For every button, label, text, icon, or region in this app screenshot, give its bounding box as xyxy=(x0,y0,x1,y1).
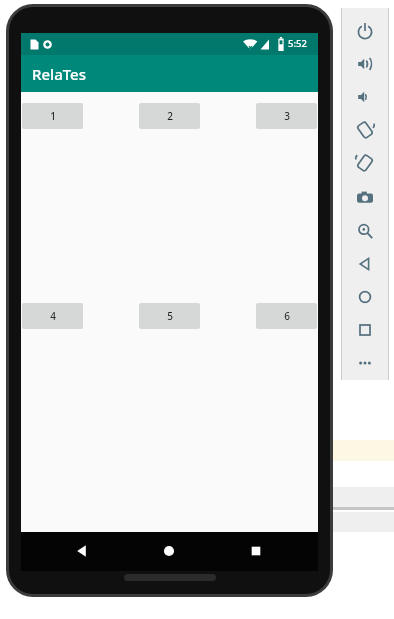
staticText: 5:52 xyxy=(288,37,307,50)
button[interactable]: More xyxy=(348,349,382,377)
button[interactable]: Rotate right xyxy=(348,149,382,177)
button[interactable]: Zoom xyxy=(348,217,382,245)
button[interactable]: 4 xyxy=(22,303,83,329)
button[interactable]: Volume down xyxy=(348,83,382,111)
button[interactable]: 1 xyxy=(22,103,83,129)
button[interactable]: Power xyxy=(348,17,382,45)
staticText: 6 xyxy=(284,309,290,323)
button[interactable]: 2 xyxy=(139,103,200,129)
button[interactable]: Home xyxy=(157,539,181,563)
staticText: 4 xyxy=(50,309,56,323)
button[interactable]: Volume up xyxy=(348,50,382,78)
staticText: 1 xyxy=(50,109,56,123)
staticText: 3 xyxy=(284,109,290,123)
button[interactable]: Take screenshot xyxy=(348,184,382,212)
button[interactable]: 6 xyxy=(256,303,317,329)
button[interactable]: Back xyxy=(348,250,382,278)
staticText: RelaTes xyxy=(32,64,87,84)
button[interactable]: Overview xyxy=(348,316,382,344)
button[interactable]: Home xyxy=(348,283,382,311)
button[interactable]: 5 xyxy=(139,303,200,329)
button[interactable]: Back xyxy=(70,539,94,563)
button[interactable]: 3 xyxy=(256,103,317,129)
button[interactable]: Recent apps xyxy=(244,539,268,563)
button[interactable]: Rotate left xyxy=(348,116,382,144)
staticText: 5 xyxy=(167,309,173,323)
staticText: 2 xyxy=(167,109,173,123)
